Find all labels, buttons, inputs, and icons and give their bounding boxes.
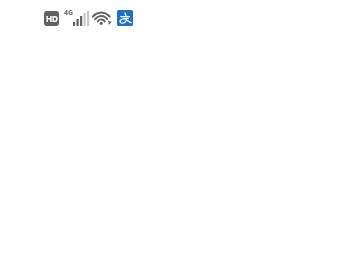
button[interactable]: Wi-Fi (92, 10, 113, 26)
button[interactable]: Mobile signal 4G (64, 8, 90, 28)
button[interactable]: HD voice (44, 11, 59, 26)
staticText: 4G (64, 8, 74, 18)
staticText: HD (46, 13, 58, 24)
button[interactable]: Input method (117, 10, 133, 26)
